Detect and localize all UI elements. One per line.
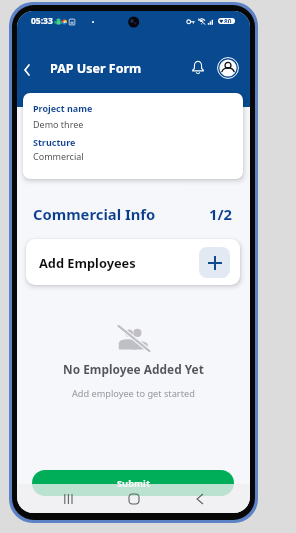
button[interactable]: Add employee (199, 247, 230, 278)
staticText: 05:33 (31, 15, 53, 27)
button[interactable]: Profile (217, 57, 239, 79)
staticText: Add employee to get started (72, 387, 195, 400)
staticText: PAP User Form (50, 60, 142, 77)
button[interactable]: Recent apps (58, 489, 78, 509)
button[interactable]: Notifications (187, 56, 209, 78)
staticText: Commercial (33, 150, 84, 162)
staticText: Submit (117, 477, 150, 490)
staticText: Demo three (33, 118, 84, 130)
button[interactable]: Back (17, 59, 38, 81)
button[interactable]: Submit (32, 470, 234, 496)
staticText: Commercial Info (33, 204, 156, 224)
staticText: Add Employees (39, 254, 136, 271)
staticText: Structure (33, 136, 76, 148)
staticText: Project name (33, 102, 93, 114)
button[interactable]: Home (124, 489, 144, 509)
staticText: 1/2 (209, 204, 233, 224)
staticText: No Employee Added Yet (63, 361, 204, 377)
button[interactable]: Add Employees (26, 239, 240, 285)
button[interactable]: Back (190, 489, 210, 509)
staticText: 80 (224, 18, 232, 23)
